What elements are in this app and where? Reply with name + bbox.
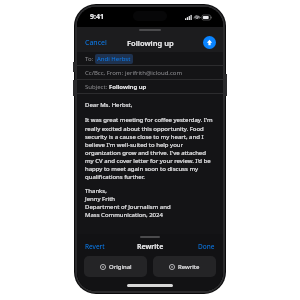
staticText: It was great meeting for coffee yesterda… — [85, 116, 215, 180]
staticText: Original — [109, 263, 132, 271]
staticText: Rewrite — [178, 263, 200, 271]
button[interactable]: Cc/Bcc, From: — [77, 66, 223, 79]
staticText: Done — [198, 242, 215, 251]
staticText: Subject: — [85, 83, 109, 91]
staticText: 9:41 — [90, 12, 104, 22]
staticText: To: — [85, 55, 95, 63]
staticText: Andi Herbst — [97, 55, 131, 63]
staticText: Following up — [127, 38, 174, 48]
staticText: Cc/Bcc, From: — [85, 69, 125, 77]
button[interactable]: To: — [77, 52, 223, 65]
staticText: Dear Ms. Herbst, — [85, 101, 133, 109]
button[interactable]: Rewrite — [153, 256, 216, 277]
staticText: Department of Journalism and — [85, 203, 171, 211]
staticText: Thanks, — [85, 187, 107, 195]
staticText: Mass Communication, 2024 — [85, 211, 163, 219]
staticText: Jenny Frith — [85, 195, 116, 203]
staticText: Cancel — [85, 38, 107, 48]
button[interactable]: Done — [190, 240, 223, 253]
staticText: Following up — [109, 83, 147, 91]
button[interactable]: Revert — [77, 240, 113, 253]
staticText: Rewrite — [137, 242, 164, 252]
staticText: jerifrith@icloud.com — [125, 69, 183, 77]
button[interactable]: Send — [203, 36, 216, 49]
button[interactable]: Original — [84, 256, 147, 277]
staticText: Revert — [85, 242, 105, 251]
button[interactable]: Subject: — [77, 80, 223, 93]
button[interactable]: Cancel — [77, 35, 115, 51]
